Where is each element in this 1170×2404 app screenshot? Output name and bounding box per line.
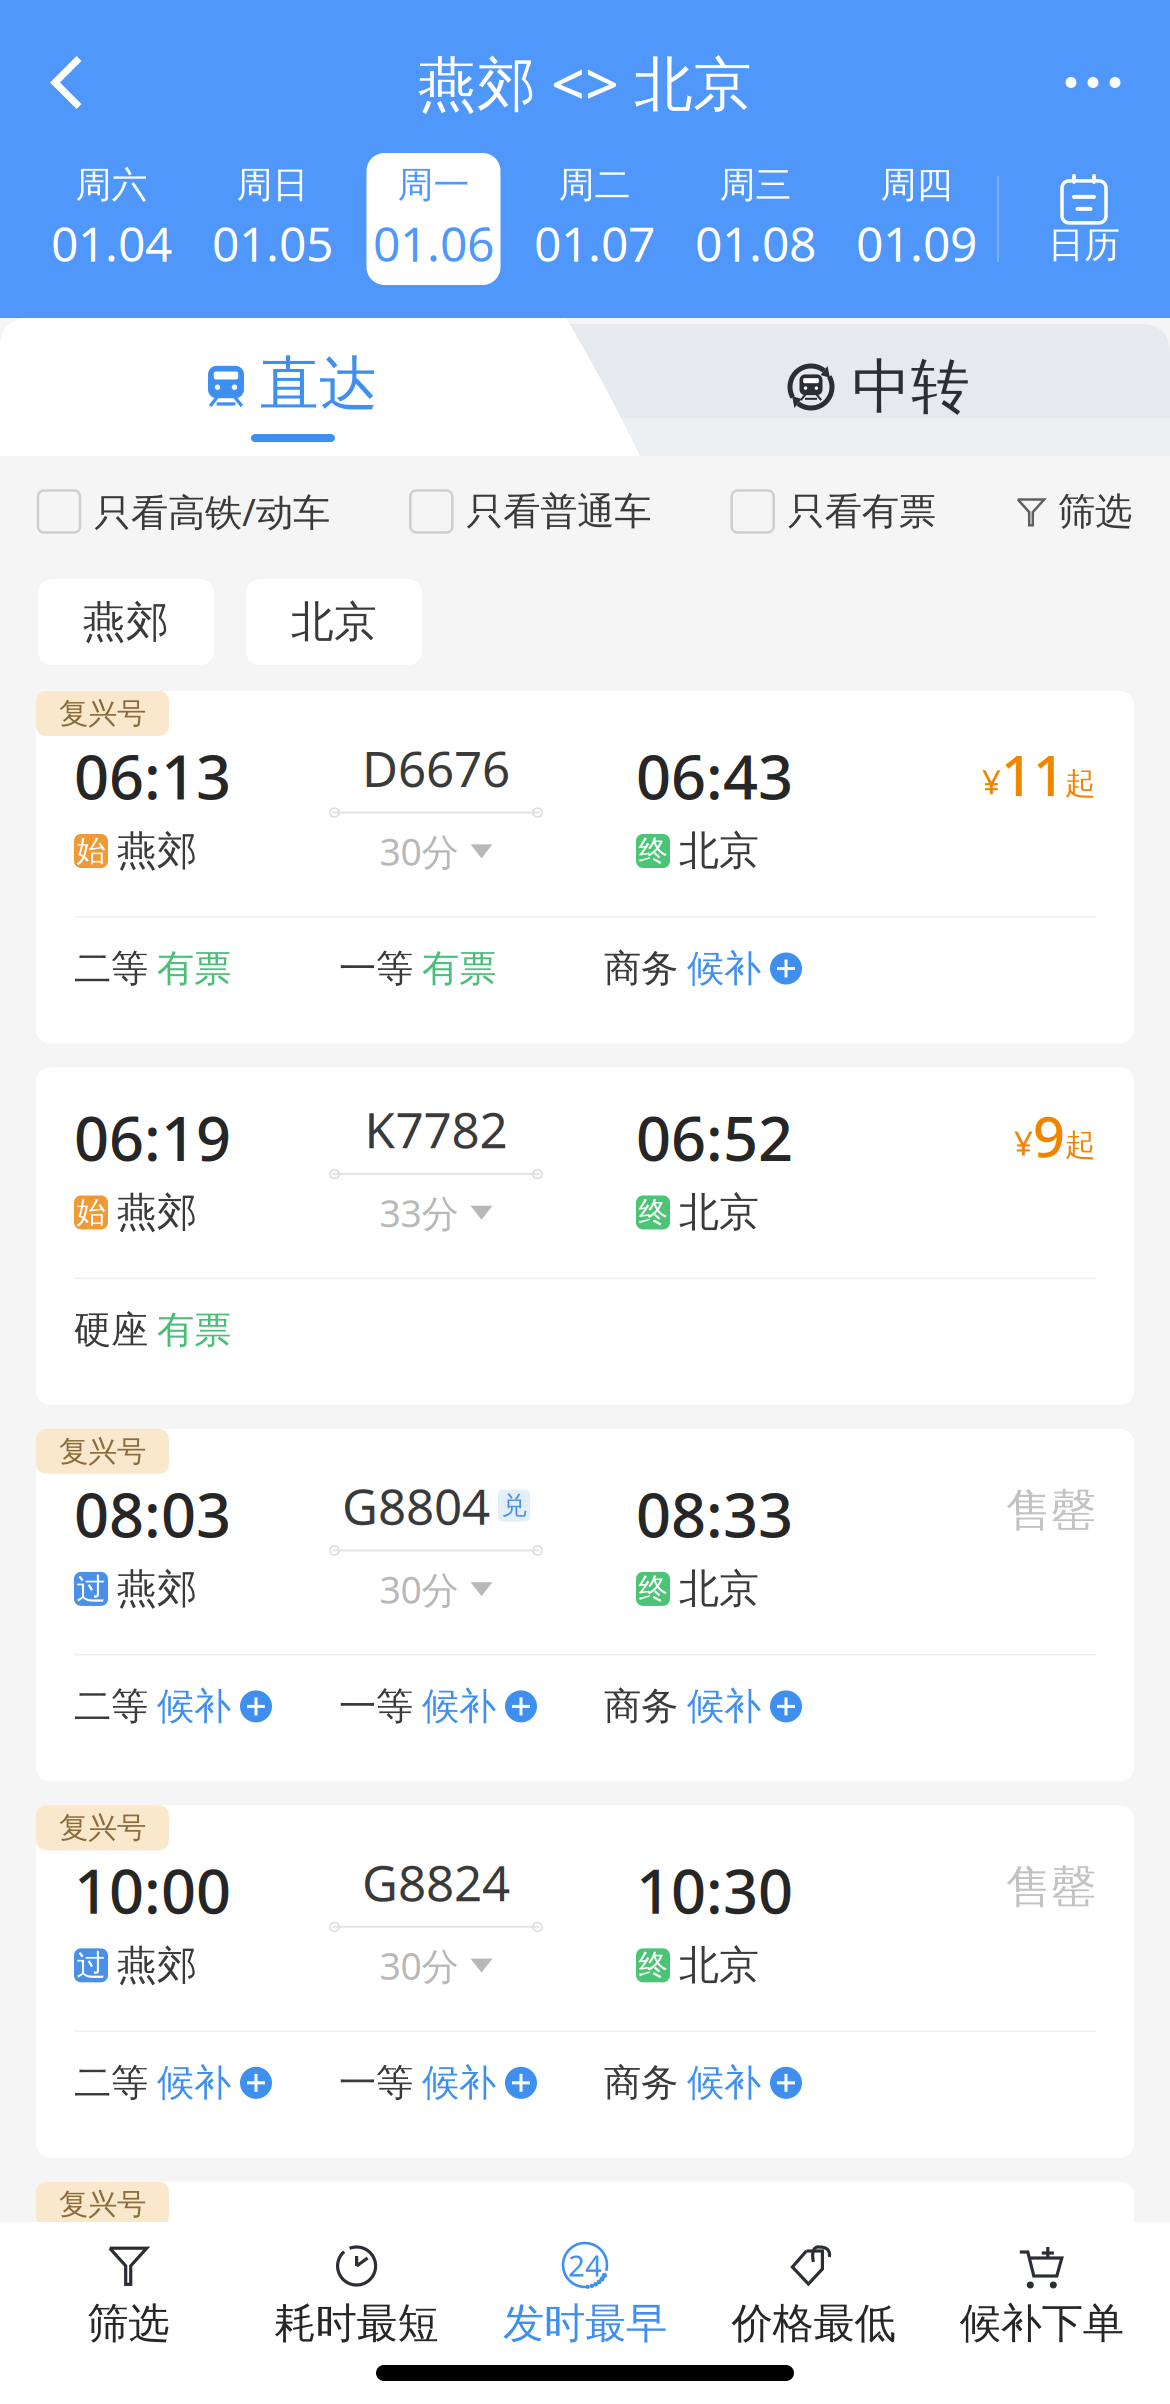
button[interactable]: 中转: [586, 318, 1170, 456]
staticText: 燕郊 <> 北京: [418, 43, 752, 121]
staticText: 过: [76, 1947, 105, 1983]
staticText: 08:33: [636, 1473, 793, 1554]
button[interactable]: 直达: [0, 318, 586, 456]
button[interactable]: 更多: [1028, 27, 1158, 137]
staticText: 燕郊: [117, 2317, 197, 2366]
staticText: 起: [1065, 1126, 1096, 1164]
button[interactable]: 北京: [246, 579, 422, 665]
staticText: 北京: [679, 826, 759, 875]
button[interactable]: 06:19: [36, 1067, 1134, 1405]
staticText: 只看普通车: [466, 489, 651, 534]
button[interactable]: 11:00: [36, 2182, 1134, 2404]
button[interactable]: 10:00: [36, 1805, 1134, 2158]
staticText: 北京: [679, 1941, 759, 1990]
staticText: 周六: [75, 163, 147, 207]
button[interactable]: 周三: [675, 153, 836, 285]
button[interactable]: 筛选: [1016, 489, 1132, 534]
button[interactable]: 耗时最短: [242, 2204, 471, 2404]
staticText: 始: [76, 1194, 105, 1230]
staticText: 北京: [291, 596, 377, 648]
button[interactable]: 返回: [12, 27, 122, 137]
staticText: 30分: [379, 1564, 458, 1614]
staticText: 候补: [687, 1683, 761, 1729]
button[interactable]: 06:13: [36, 691, 1134, 1043]
staticText: 终: [638, 1194, 667, 1230]
staticText: 周一: [397, 163, 469, 207]
staticText: 24: [568, 2245, 602, 2284]
button[interactable]: 燕郊: [38, 579, 214, 665]
staticText: 兑: [501, 1490, 526, 1521]
staticText: 01.04: [51, 211, 172, 275]
staticText: 筛选: [1058, 489, 1132, 534]
button[interactable]: 候补下单: [928, 2204, 1156, 2404]
staticText: 筛选: [87, 2298, 169, 2349]
button[interactable]: 价格最低: [699, 2204, 928, 2404]
staticText: 复兴号: [59, 1433, 146, 1469]
staticText: 直达: [260, 348, 378, 420]
button[interactable]: 周四: [836, 153, 997, 285]
staticText: 候补: [157, 1683, 231, 1729]
staticText: 08:03: [74, 1473, 231, 1554]
staticText: 候补: [687, 946, 761, 991]
staticText: 周四: [880, 163, 952, 207]
staticText: 一等: [339, 946, 413, 991]
staticText: 周二: [558, 163, 630, 207]
staticText: 01.06: [373, 211, 494, 275]
staticText: 售罄: [1006, 1859, 1096, 1915]
staticText: 01.07: [534, 211, 655, 275]
staticText: 复兴号: [59, 2186, 146, 2222]
staticText: 终: [638, 1947, 667, 1983]
button[interactable]: 周日: [192, 153, 353, 285]
staticText: 11:30: [636, 2226, 793, 2307]
staticText: 日历: [1048, 223, 1120, 267]
staticText: 燕郊: [83, 596, 169, 648]
staticText: 只看高铁/动车: [94, 487, 330, 536]
staticText: 一等: [339, 2060, 413, 2106]
staticText: 复兴号: [59, 1810, 146, 1846]
staticText: 燕郊: [117, 826, 197, 875]
staticText: 30分: [379, 826, 458, 876]
staticText: D6676: [362, 735, 510, 800]
staticText: 过: [76, 1571, 105, 1607]
staticText: 有票: [157, 946, 231, 991]
button[interactable]: 只看有票: [732, 489, 936, 534]
staticText: 终: [638, 1571, 667, 1607]
staticText: 商务: [604, 2060, 678, 2106]
staticText: 30分: [379, 1941, 458, 1990]
staticText: 候补下单: [960, 2298, 1124, 2349]
staticText: 9: [1033, 1098, 1065, 1173]
staticText: 北京: [679, 1188, 759, 1237]
button[interactable]: 日历: [999, 153, 1169, 285]
staticText: 终: [638, 833, 667, 869]
staticText: 一等: [339, 1683, 413, 1729]
staticText: 11: [1001, 737, 1065, 811]
staticText: 燕郊: [117, 1188, 197, 1237]
staticText: 只看有票: [788, 489, 936, 534]
staticText: 售罄: [1006, 2236, 1096, 2291]
staticText: 商务: [604, 1683, 678, 1729]
staticText: 06:52: [636, 1096, 793, 1178]
staticText: 过: [76, 2324, 105, 2360]
button[interactable]: 只看普通车: [410, 489, 651, 534]
staticText: 售罄: [1006, 1483, 1096, 1539]
staticText: 候补: [687, 2060, 761, 2106]
button[interactable]: 周一: [353, 153, 514, 285]
button[interactable]: 只看高铁/动车: [38, 487, 330, 536]
staticText: 33分: [379, 1188, 458, 1238]
button[interactable]: 24: [471, 2204, 699, 2404]
button[interactable]: 08:03: [36, 1429, 1134, 1781]
staticText: 周日: [236, 163, 308, 207]
button[interactable]: 筛选: [14, 2204, 242, 2404]
staticText: G8804: [342, 1473, 490, 1538]
staticText: 商务: [604, 946, 678, 991]
staticText: 30分: [379, 2317, 458, 2367]
staticText: 候补: [422, 2060, 496, 2106]
staticText: 燕郊: [117, 1564, 197, 1613]
button[interactable]: 周六: [31, 153, 192, 285]
staticText: 10:30: [636, 1849, 793, 1931]
button[interactable]: 周二: [514, 153, 675, 285]
staticText: 候补: [422, 1683, 496, 1729]
staticText: 06:13: [74, 735, 231, 816]
staticText: 11:00: [74, 2226, 231, 2307]
staticText: 二等: [74, 946, 148, 991]
